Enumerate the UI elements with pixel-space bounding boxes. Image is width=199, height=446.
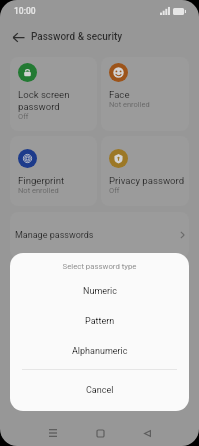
staticText: Pattern [85, 316, 115, 327]
staticText: Not enrolled [18, 186, 59, 195]
staticText: Cancel [86, 385, 114, 396]
button[interactable]: Lock screen password [10, 57, 97, 131]
button[interactable]: Privacy password [101, 136, 189, 206]
button[interactable]: Back [7, 26, 29, 48]
staticText: Select password type [10, 262, 189, 271]
staticText: Lock screen password [18, 89, 70, 112]
staticText: Manage passwords [15, 230, 94, 241]
button[interactable]: Home [87, 420, 113, 446]
button[interactable]: Numeric [10, 276, 189, 306]
staticText: Fingerprint [18, 175, 65, 186]
button[interactable]: Pattern [10, 306, 189, 336]
button[interactable]: Alphanumeric [10, 336, 189, 366]
staticText: Password & security [31, 31, 123, 43]
button[interactable]: Face [101, 57, 189, 131]
staticText: 10:00 [14, 6, 36, 16]
button[interactable]: Recent apps [40, 420, 66, 446]
staticText: Off [18, 112, 29, 121]
staticText: Off [109, 186, 120, 195]
staticText: Face [109, 89, 130, 100]
staticText: Not enrolled [109, 100, 150, 109]
staticText: Privacy password [109, 175, 185, 186]
staticText: Numeric [83, 286, 117, 297]
button[interactable]: Manage passwords [10, 212, 189, 258]
button[interactable]: Fingerprint [10, 136, 97, 206]
button[interactable]: Cancel [10, 370, 189, 411]
staticText: Alphanumeric [72, 346, 128, 357]
button[interactable]: Back [134, 420, 160, 446]
